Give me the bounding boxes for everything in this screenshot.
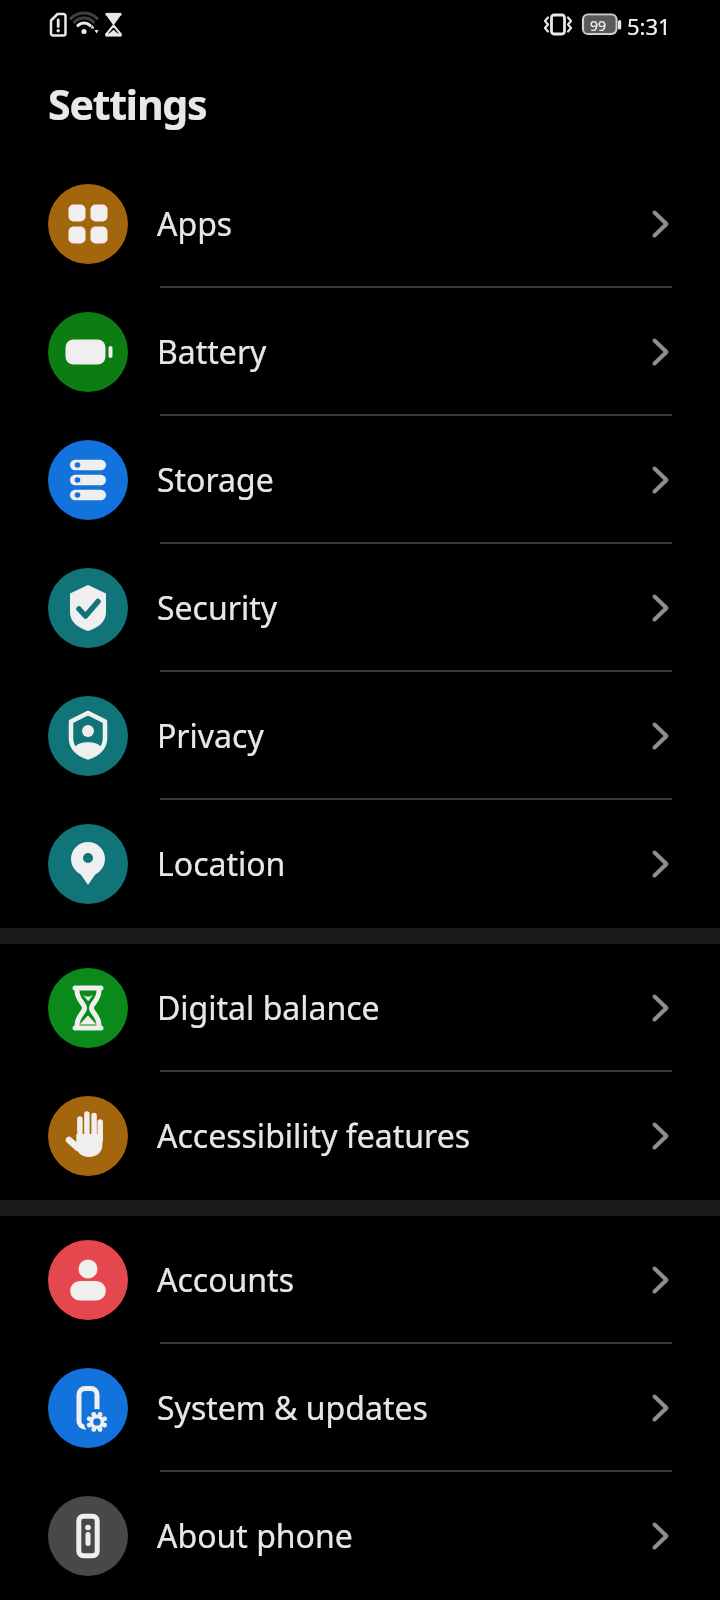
button[interactable]: System & updates	[0, 1344, 720, 1472]
button[interactable]: Location	[0, 800, 720, 928]
button[interactable]: Accounts	[0, 1216, 720, 1344]
button[interactable]: Apps	[0, 160, 720, 288]
button[interactable]: Security	[0, 544, 720, 672]
staticText: Storage	[157, 458, 274, 502]
button[interactable]: Privacy	[0, 672, 720, 800]
button[interactable]: Battery	[0, 288, 720, 416]
staticText: Accounts	[157, 1258, 294, 1302]
staticText: Settings	[48, 76, 207, 132]
staticText: 99	[590, 16, 607, 35]
staticText: 5:31	[627, 11, 671, 41]
staticText: System & updates	[157, 1386, 428, 1430]
button[interactable]: Accessibility features	[0, 1072, 720, 1200]
staticText: Location	[157, 842, 286, 886]
staticText: Apps	[157, 202, 233, 246]
staticText: Privacy	[157, 714, 264, 758]
button[interactable]: About phone	[0, 1472, 720, 1600]
staticText: Security	[157, 586, 278, 630]
button[interactable]: Digital balance	[0, 944, 720, 1072]
staticText: Digital balance	[157, 986, 380, 1030]
staticText: Battery	[157, 330, 267, 374]
staticText: About phone	[157, 1514, 353, 1558]
button[interactable]: Storage	[0, 416, 720, 544]
staticText: Accessibility features	[157, 1114, 471, 1158]
